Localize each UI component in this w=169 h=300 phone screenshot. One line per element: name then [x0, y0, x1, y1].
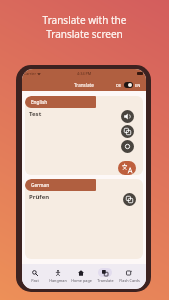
button[interactable]: Home page [69, 264, 93, 289]
staticText: Prüfen [29, 193, 50, 201]
staticText: German [31, 182, 50, 188]
staticText: Hangman [49, 278, 67, 283]
staticText: DE [116, 83, 122, 88]
button[interactable]: Past [23, 264, 46, 289]
button[interactable]: Copy [121, 125, 134, 138]
button[interactable]: German [25, 179, 143, 259]
staticText: Translate with the Translate screen [0, 13, 169, 41]
staticText: 4:34 PM [77, 71, 92, 76]
button[interactable]: Listen [121, 110, 134, 123]
button[interactable]: Copy [123, 193, 136, 206]
button[interactable]: Hangman [46, 264, 69, 289]
button[interactable]: Flash Cards [117, 264, 141, 289]
staticText: EN [135, 83, 141, 88]
button[interactable]: Translate [93, 264, 117, 289]
staticText: Past [31, 278, 39, 283]
button[interactable]: Translate [118, 161, 136, 175]
staticText: Test [29, 110, 42, 118]
button[interactable]: Language toggle [124, 82, 133, 88]
button[interactable]: Clear [121, 140, 134, 153]
staticText: Translate [74, 82, 94, 88]
staticText: Carrier [24, 71, 36, 76]
staticText: Flash Cards [119, 278, 140, 283]
staticText: Translate [97, 278, 114, 283]
button[interactable]: English [25, 96, 143, 175]
staticText: English [31, 99, 48, 105]
staticText: Home page [71, 278, 92, 283]
